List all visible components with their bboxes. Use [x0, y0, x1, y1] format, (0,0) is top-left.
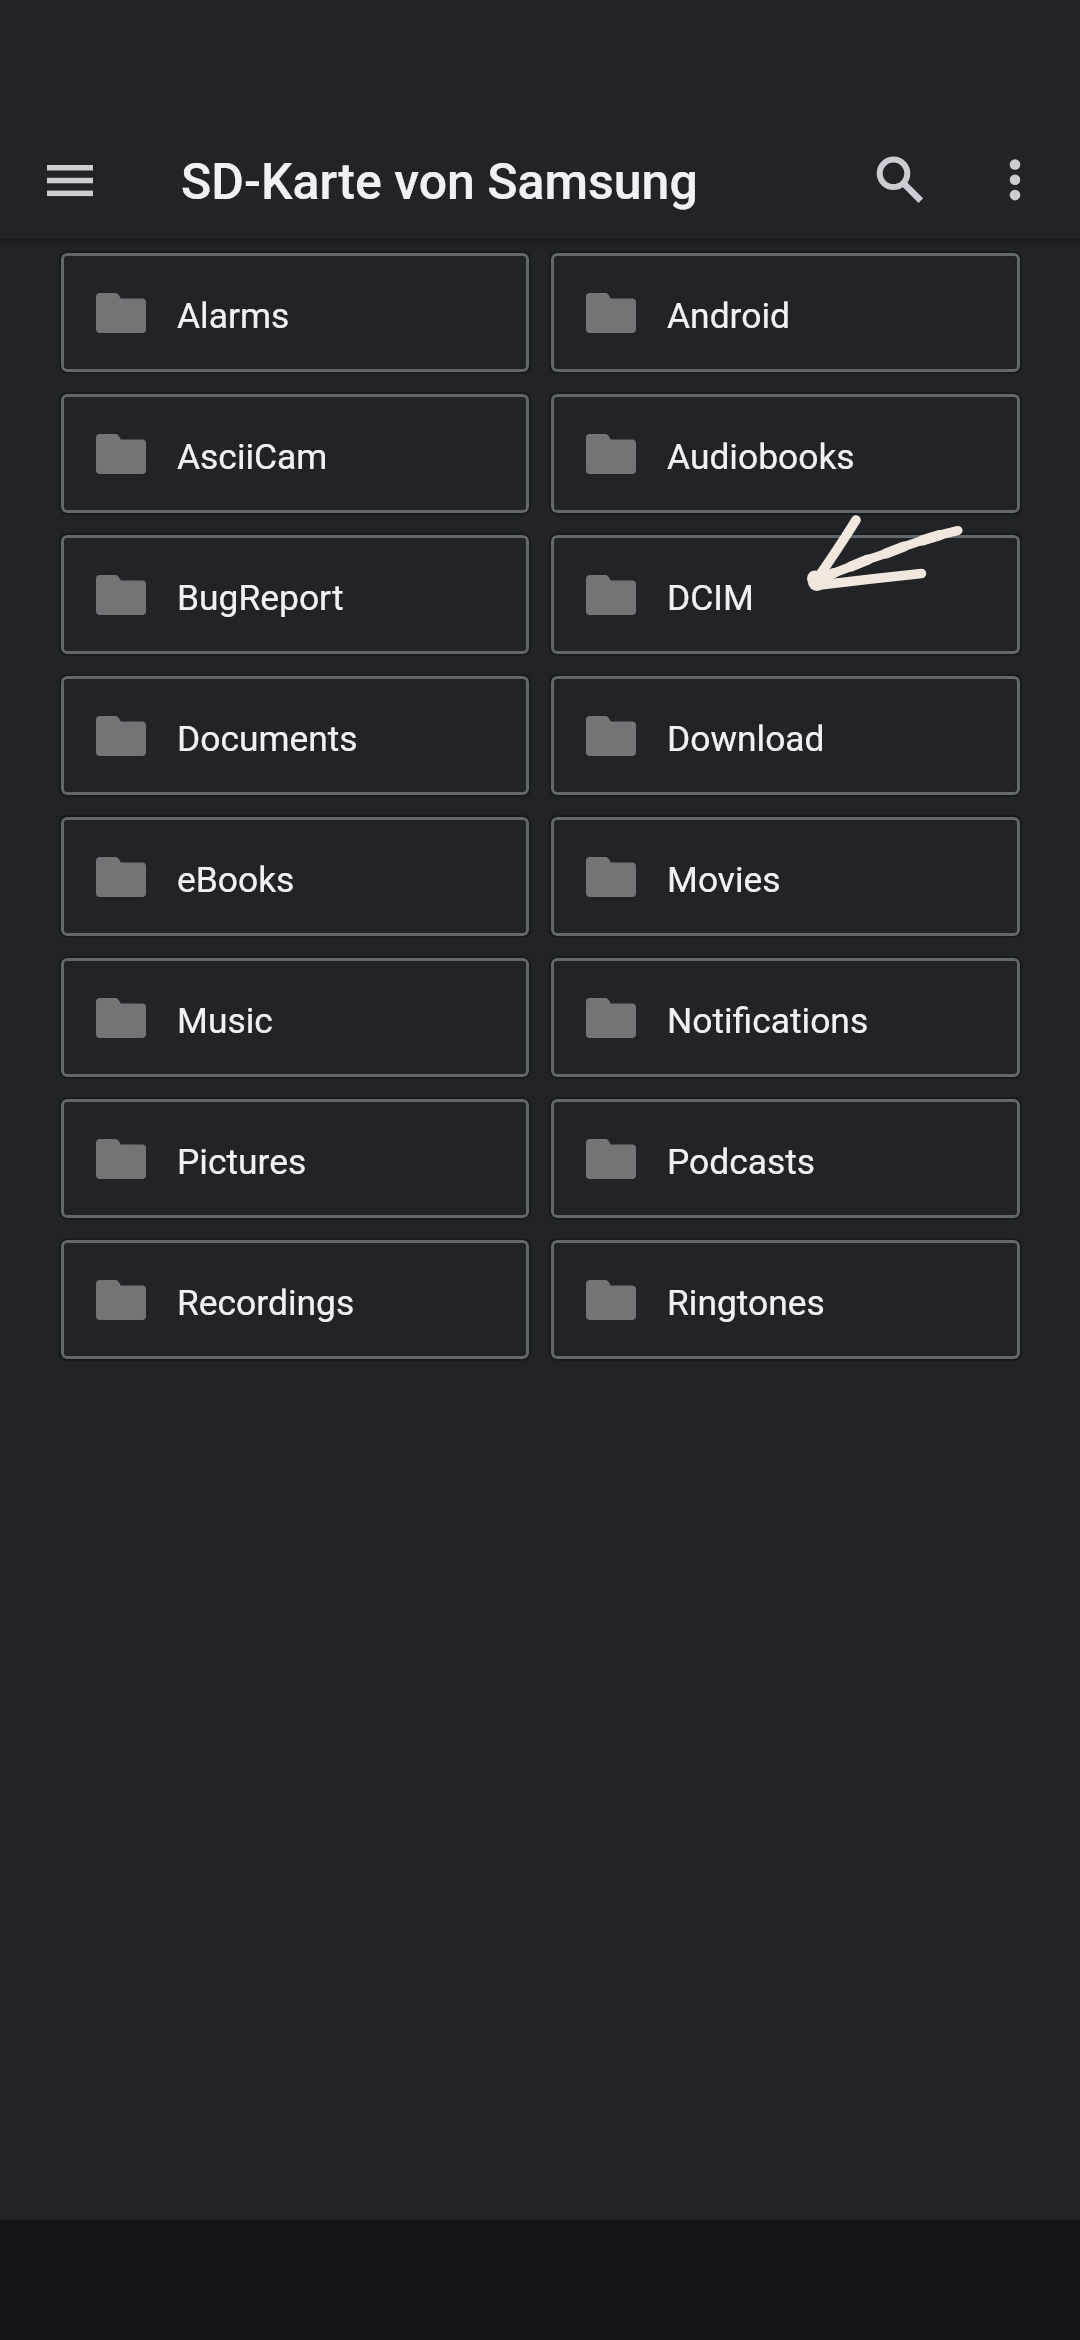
- button[interactable]: Open navigation drawer: [24, 134, 116, 226]
- staticText: Pictures: [177, 1141, 307, 1182]
- button[interactable]: eBooks: [61, 817, 529, 936]
- button[interactable]: More options: [969, 134, 1061, 226]
- button[interactable]: Ringtones: [551, 1240, 1020, 1359]
- button[interactable]: BugReport: [61, 535, 529, 654]
- button[interactable]: Documents: [61, 676, 529, 795]
- staticText: Download: [667, 718, 825, 759]
- button[interactable]: Recordings: [61, 1240, 529, 1359]
- staticText: Ringtones: [667, 1282, 825, 1323]
- button[interactable]: Podcasts: [551, 1099, 1020, 1218]
- staticText: AsciiCam: [177, 436, 328, 477]
- staticText: SD-Karte von Samsung: [181, 153, 698, 212]
- button[interactable]: Android: [551, 253, 1020, 372]
- button[interactable]: Pictures: [61, 1099, 529, 1218]
- staticText: Notifications: [667, 1000, 869, 1041]
- staticText: Audiobooks: [667, 436, 855, 477]
- button[interactable]: Search: [848, 134, 940, 226]
- staticText: Movies: [667, 859, 781, 900]
- button[interactable]: Movies: [551, 817, 1020, 936]
- button[interactable]: AsciiCam: [61, 394, 529, 513]
- staticText: Music: [177, 1000, 273, 1041]
- staticText: Alarms: [177, 295, 290, 336]
- staticText: Podcasts: [667, 1141, 816, 1182]
- staticText: BugReport: [177, 577, 344, 618]
- button[interactable]: Alarms: [61, 253, 529, 372]
- button[interactable]: Audiobooks: [551, 394, 1020, 513]
- staticText: eBooks: [177, 859, 295, 900]
- staticText: Android: [667, 295, 790, 336]
- staticText: Documents: [177, 718, 358, 759]
- button[interactable]: Music: [61, 958, 529, 1077]
- button[interactable]: Download: [551, 676, 1020, 795]
- staticText: DCIM: [667, 577, 754, 618]
- staticText: Recordings: [177, 1282, 355, 1323]
- button[interactable]: Notifications: [551, 958, 1020, 1077]
- button[interactable]: DCIM: [551, 535, 1020, 654]
